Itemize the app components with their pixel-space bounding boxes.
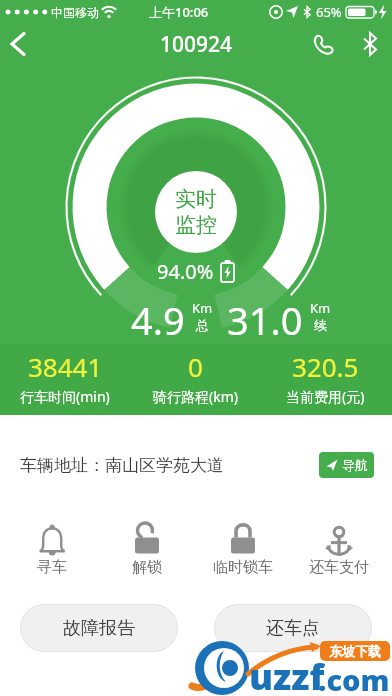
button[interactable]: 320.5 (260, 344, 390, 415)
button[interactable]: 还车支付 (299, 520, 379, 584)
staticText: uzzf (249, 652, 325, 696)
button[interactable]: 38441 (0, 344, 130, 415)
button[interactable]: 0 (130, 344, 260, 415)
staticText: 东坡下载 (329, 643, 381, 659)
staticText: Km (192, 299, 213, 317)
staticText: 320.5 (292, 349, 359, 384)
staticText: Km (310, 299, 331, 317)
staticText: 骑行路程(km) (153, 387, 238, 406)
staticText: 还车点 (266, 617, 320, 640)
staticText: 上午10:06 (149, 3, 209, 21)
staticText: .com (318, 660, 390, 696)
staticText: 车辆地址：南山区学苑大道 (20, 455, 224, 476)
staticText: 94.0% (157, 258, 214, 284)
staticText: 解锁 (132, 558, 162, 577)
staticText: 总 (196, 317, 209, 333)
button[interactable] (304, 24, 342, 64)
staticText: 100924 (160, 30, 233, 59)
staticText: 65% (316, 3, 342, 21)
staticText: 续 (314, 317, 327, 333)
staticText: 临时锁车 (213, 558, 273, 577)
staticText: 0 (188, 349, 203, 384)
button[interactable]: 导航 (319, 452, 374, 478)
staticText: 故障报告 (63, 617, 135, 640)
button[interactable]: 故障报告 (20, 604, 178, 652)
button[interactable]: 解锁 (107, 520, 187, 584)
staticText: 38441 (28, 349, 103, 384)
staticText: 当前费用(元) (286, 387, 365, 406)
staticText: 寻车 (37, 558, 67, 577)
staticText: 中国移动 (51, 5, 99, 20)
staticText: 导航 (342, 457, 368, 473)
staticText: 监控 (175, 212, 217, 238)
staticText: 31.0 (227, 294, 303, 338)
button[interactable] (352, 24, 388, 64)
button[interactable]: 临时锁车 (203, 520, 283, 584)
staticText: 实时 (175, 186, 217, 212)
staticText: 行车时间(min) (20, 387, 110, 406)
staticText: 4.9 (131, 294, 185, 338)
staticText: 还车支付 (309, 558, 369, 577)
button[interactable] (0, 24, 44, 64)
button[interactable]: 还车点 (214, 604, 372, 652)
button[interactable]: 寻车 (12, 520, 92, 584)
